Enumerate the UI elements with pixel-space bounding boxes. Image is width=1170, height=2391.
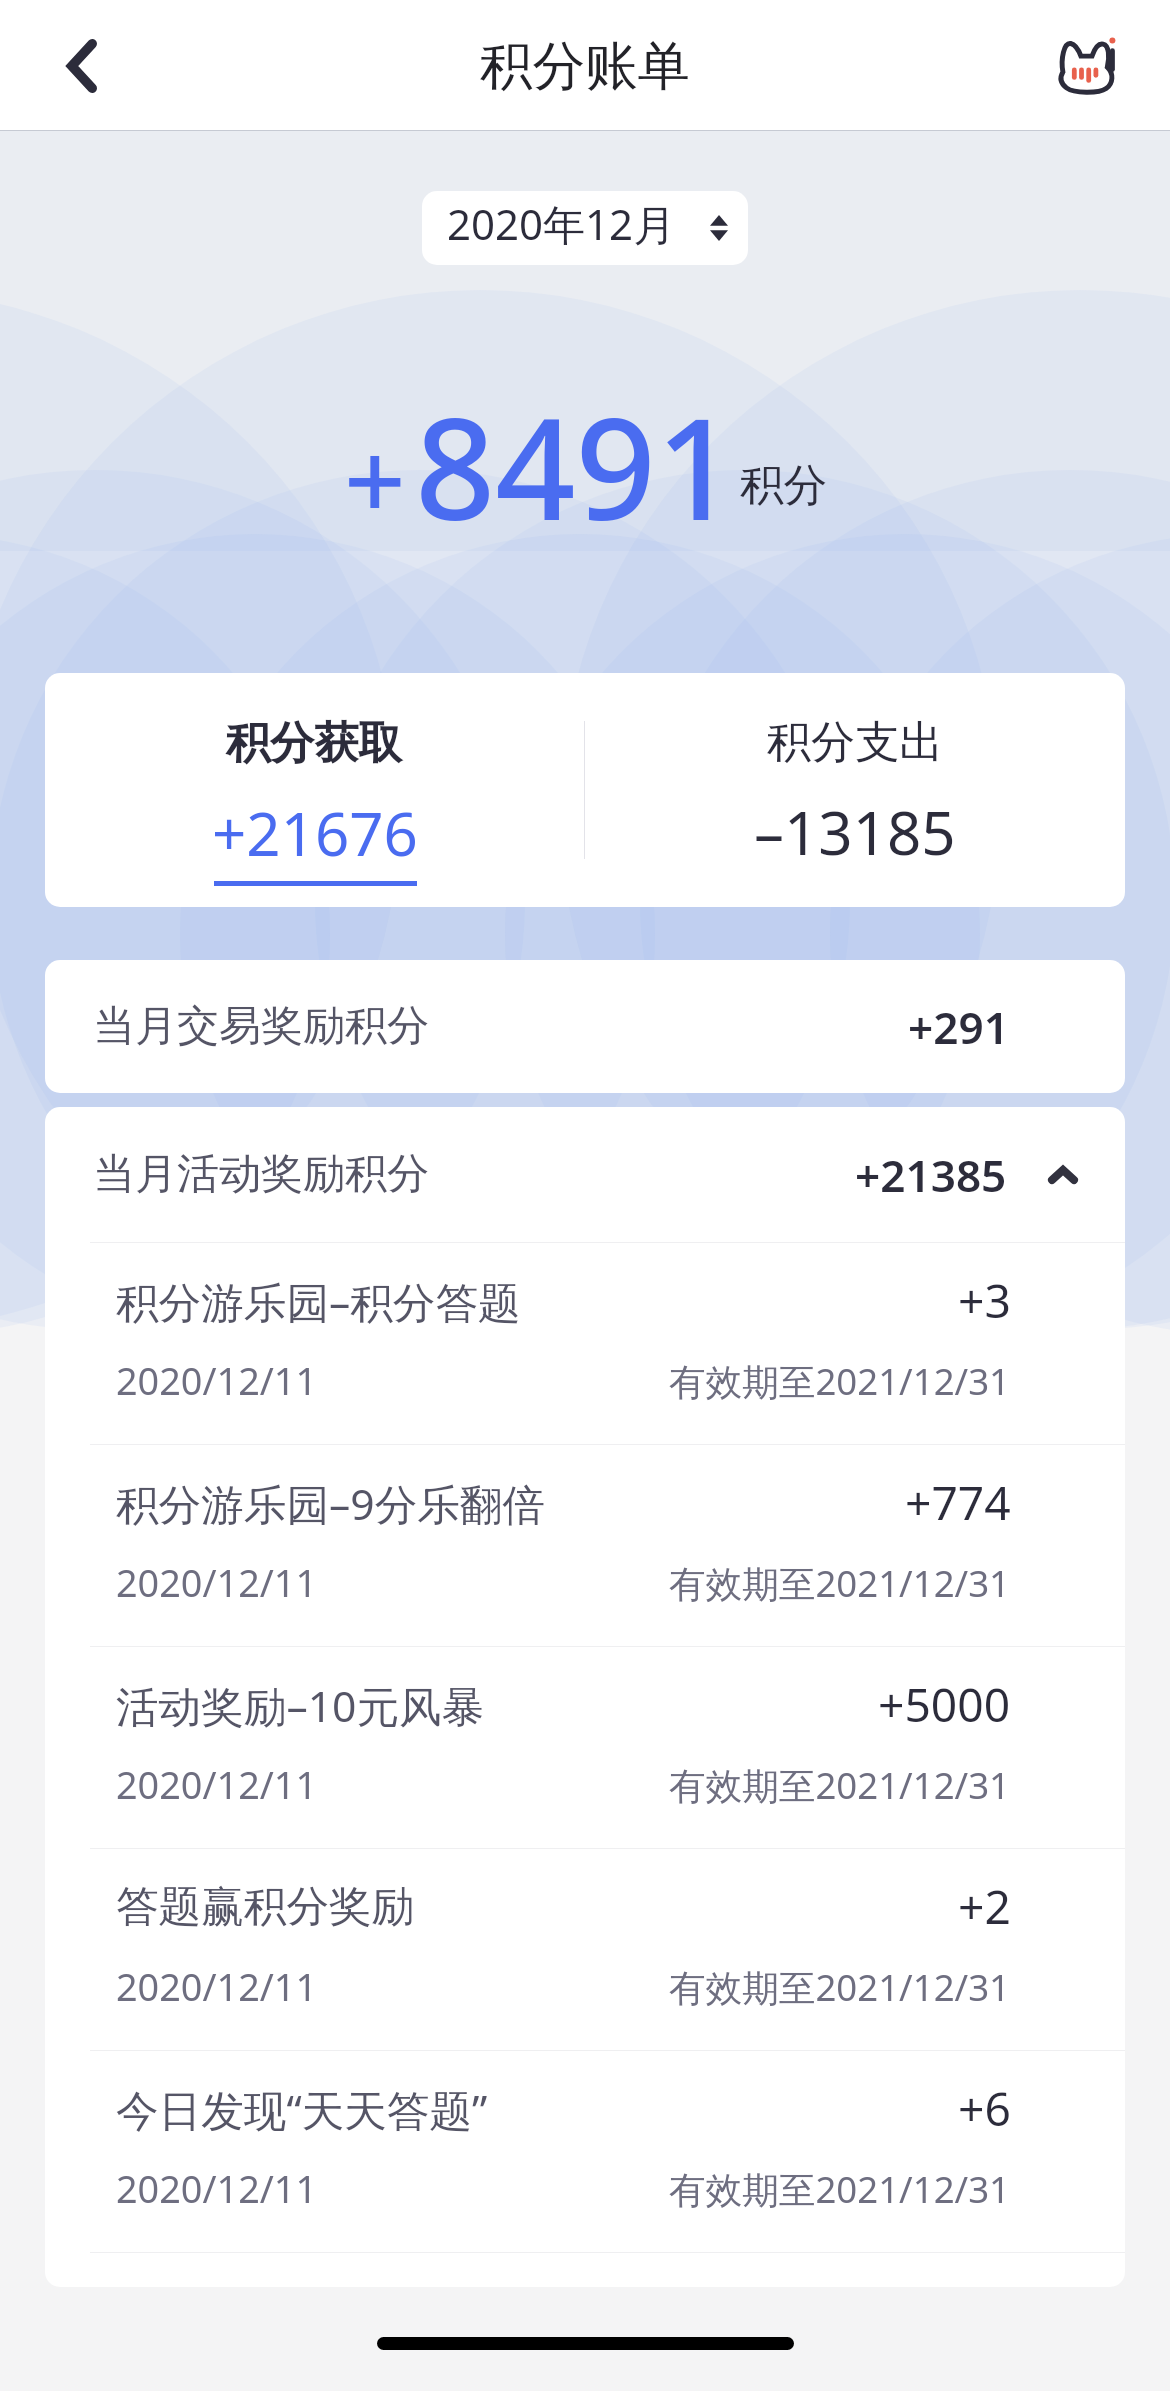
staticText: 有效期至2021/12/31 xyxy=(669,1760,1011,1810)
button[interactable]: 今日发现“天天答题” xyxy=(45,2051,1125,2252)
staticText: 积分游乐园–积分答题 xyxy=(116,1272,521,1330)
button[interactable]: 积分获取 xyxy=(45,673,584,907)
button[interactable]: Smart assistant xyxy=(1056,36,1116,96)
staticText: 积分 xyxy=(740,458,827,513)
staticText: 2020/12/11 xyxy=(116,1759,318,1810)
staticText: 8491 xyxy=(415,370,737,561)
staticText: 2020/12/11 xyxy=(116,1557,318,1608)
button[interactable]: 积分游乐园–积分答题 xyxy=(45,1243,1125,1444)
staticText: +5000 xyxy=(878,1673,1011,1736)
staticText: +21676 xyxy=(212,792,418,874)
staticText: 今日发现“天天答题” xyxy=(116,2080,488,2138)
staticText: + xyxy=(344,405,406,552)
staticText: 当月交易奖励积分 xyxy=(93,1000,429,1053)
button[interactable]: 答题赢积分奖励 xyxy=(45,1849,1125,2050)
staticText: +21385 xyxy=(855,1145,1007,1205)
staticText: –13185 xyxy=(754,791,956,873)
staticText: +291 xyxy=(908,997,1009,1057)
staticText: 2020年12月 xyxy=(447,195,676,252)
button[interactable]: 积分游乐园–9分乐翻倍 xyxy=(45,1445,1125,1646)
staticText: 当月活动奖励积分 xyxy=(93,1148,429,1201)
staticText: 有效期至2021/12/31 xyxy=(669,1962,1011,2012)
staticText: 2020/12/11 xyxy=(116,1961,318,2012)
staticText: 2020/12/11 xyxy=(116,2163,318,2214)
staticText: 2020/12/11 xyxy=(116,1355,318,1406)
button[interactable]: Back xyxy=(55,33,109,99)
button[interactable]: 活动奖励–10元风暴 xyxy=(45,1647,1125,1848)
staticText: 有效期至2021/12/31 xyxy=(669,1356,1011,1406)
staticText: 积分获取 xyxy=(226,716,403,772)
staticText: +3 xyxy=(958,1269,1011,1332)
staticText: +2 xyxy=(958,1875,1011,1938)
button[interactable]: 当月交易奖励积分 xyxy=(45,960,1125,1093)
button[interactable]: 2020年12月 xyxy=(422,191,748,265)
staticText: 积分账单 xyxy=(480,33,690,99)
staticText: 有效期至2021/12/31 xyxy=(669,1558,1011,1608)
staticText: +774 xyxy=(905,1471,1011,1534)
button[interactable]: 当月活动奖励积分 xyxy=(45,1107,1125,1242)
staticText: 积分支出 xyxy=(767,715,944,771)
staticText: 有效期至2021/12/31 xyxy=(669,2164,1011,2214)
button[interactable]: 积分支出 xyxy=(585,673,1125,907)
staticText: 活动奖励–10元风暴 xyxy=(116,1676,485,1734)
staticText: 答题赢积分奖励 xyxy=(116,1880,415,1934)
staticText: 积分游乐园–9分乐翻倍 xyxy=(116,1474,546,1532)
staticText: +6 xyxy=(958,2077,1011,2140)
